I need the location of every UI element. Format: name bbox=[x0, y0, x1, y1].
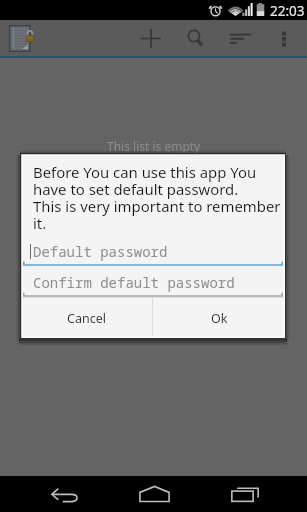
button[interactable]: Add bbox=[131, 20, 171, 56]
staticText: Cancel bbox=[67, 310, 106, 327]
staticText: This list is empty bbox=[107, 138, 201, 154]
button[interactable]: Recents bbox=[209, 476, 281, 512]
button[interactable]: Cancel bbox=[21, 298, 152, 338]
staticText: Ok bbox=[211, 310, 228, 327]
button[interactable]: Back bbox=[29, 476, 101, 512]
button[interactable]: Ok bbox=[153, 298, 285, 338]
button[interactable]: App icon bbox=[2, 20, 42, 56]
button[interactable]: Sort bbox=[220, 20, 260, 56]
button[interactable]: Search bbox=[175, 20, 215, 56]
button[interactable]: Confirm default password bbox=[23, 268, 283, 297]
button[interactable]: More options bbox=[264, 20, 304, 56]
button[interactable]: Default password bbox=[23, 237, 283, 266]
staticText: Confirm default password bbox=[33, 273, 235, 292]
button[interactable]: Home bbox=[118, 476, 190, 512]
staticText: Default password bbox=[33, 242, 168, 261]
staticText: 22:03 bbox=[270, 2, 305, 20]
staticText: Before You can use this app You have to … bbox=[33, 162, 283, 234]
